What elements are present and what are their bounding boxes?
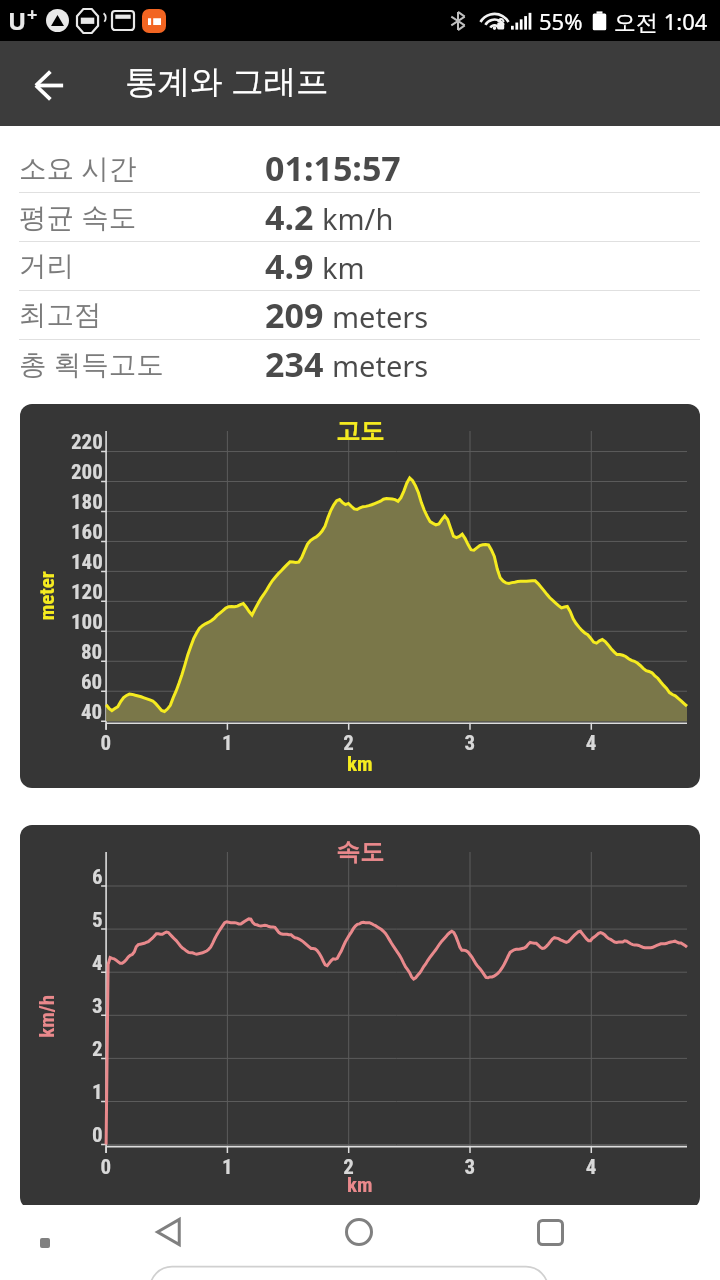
staticText: 4.2 <box>265 194 314 240</box>
staticText: 209 <box>265 292 324 338</box>
button[interactable]: Recents <box>524 1206 576 1258</box>
staticText: 55% <box>539 6 583 36</box>
staticText: km/h <box>322 199 394 238</box>
staticText: 01:15:57 <box>265 145 401 191</box>
button[interactable] <box>20 825 700 1209</box>
staticText: 234 <box>265 341 324 387</box>
button[interactable] <box>20 404 700 788</box>
staticText: 통계와 그래프 <box>125 58 329 102</box>
staticText: 총 획득고도 <box>19 345 164 383</box>
button[interactable]: 최고점 <box>0 291 720 339</box>
staticText: U <box>8 4 27 37</box>
staticText: 최고점 <box>19 298 102 333</box>
staticText: km <box>322 248 365 287</box>
button[interactable]: 거리 <box>0 242 720 290</box>
staticText: 오전 1:04 <box>614 6 708 36</box>
staticText: meters <box>332 346 429 385</box>
staticText: 소요 시간 <box>19 149 137 187</box>
button[interactable]: Back <box>17 53 81 117</box>
staticText: 4.9 <box>265 243 314 289</box>
staticText: meters <box>332 297 429 336</box>
staticText: 거리 <box>19 249 74 284</box>
button[interactable]: Home <box>333 1206 385 1258</box>
button[interactable]: 평균 속도 <box>0 193 720 241</box>
button[interactable]: 총 획득고도 <box>0 340 720 388</box>
staticText: 평균 속도 <box>19 198 137 236</box>
button[interactable]: 소요 시간 <box>0 144 720 192</box>
staticText: + <box>27 2 38 27</box>
button[interactable]: Back <box>142 1206 194 1258</box>
